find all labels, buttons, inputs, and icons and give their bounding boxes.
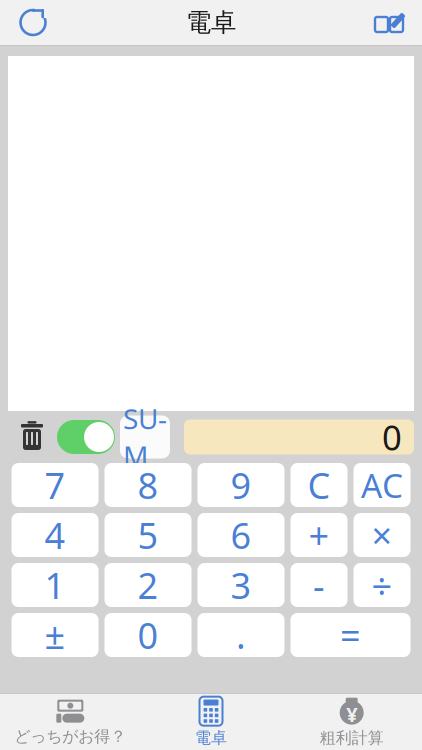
button[interactable]: ± xyxy=(11,613,98,657)
button[interactable]: Reset xyxy=(6,0,60,44)
button[interactable]: . xyxy=(197,613,284,657)
staticText: 1 xyxy=(44,561,65,609)
staticText: 粗利計算 xyxy=(320,728,384,748)
button[interactable]: Tape on xyxy=(54,415,118,459)
button[interactable]: 電卓 xyxy=(141,694,281,750)
staticText: どっちがお得？ xyxy=(14,727,126,746)
button[interactable]: = xyxy=(290,613,410,657)
staticText: = xyxy=(340,611,361,659)
staticText: × xyxy=(371,511,392,559)
button[interactable]: + xyxy=(290,513,347,557)
staticText: ± xyxy=(44,611,65,659)
button[interactable]: どっちがお得？ xyxy=(0,694,141,750)
button[interactable]: AC xyxy=(353,463,410,507)
button[interactable]: 2 xyxy=(104,563,191,607)
staticText: 3 xyxy=(230,561,251,609)
staticText: SUM xyxy=(123,400,167,474)
staticText: ¥ xyxy=(346,701,357,727)
staticText: 電卓 xyxy=(186,7,236,38)
staticText: 7 xyxy=(44,461,65,509)
staticText: 電卓 xyxy=(195,728,227,748)
staticText: 4 xyxy=(44,511,65,559)
staticText: - xyxy=(313,561,325,609)
button[interactable]: × xyxy=(353,513,410,557)
staticText: C xyxy=(307,461,330,509)
button[interactable]: 1 xyxy=(11,563,98,607)
button[interactable]: 6 xyxy=(197,513,284,557)
button[interactable]: 5 xyxy=(104,513,191,557)
button[interactable]: ÷ xyxy=(353,563,410,607)
staticText: ÷ xyxy=(371,561,392,609)
staticText: + xyxy=(308,511,329,559)
button[interactable]: Notes xyxy=(362,0,416,44)
staticText: 9 xyxy=(230,461,251,509)
button[interactable]: - xyxy=(290,563,347,607)
button[interactable]: 3 xyxy=(197,563,284,607)
staticText: AC xyxy=(361,463,403,507)
button[interactable]: 9 xyxy=(197,463,284,507)
staticText: 8 xyxy=(137,461,158,509)
button[interactable]: 7 xyxy=(11,463,98,507)
button[interactable]: ¥ xyxy=(281,694,422,750)
staticText: . xyxy=(236,611,246,659)
staticText: 6 xyxy=(230,511,251,559)
button[interactable]: 8 xyxy=(104,463,191,507)
staticText: 0 xyxy=(137,611,158,659)
button[interactable]: SUM xyxy=(120,415,170,458)
staticText: 5 xyxy=(137,511,158,559)
button[interactable]: 0 xyxy=(104,613,191,657)
staticText: 0 xyxy=(382,414,402,460)
button[interactable]: Clear tape xyxy=(10,415,54,459)
button[interactable]: C xyxy=(290,463,347,507)
staticText: 2 xyxy=(137,561,158,609)
button[interactable]: 4 xyxy=(11,513,98,557)
